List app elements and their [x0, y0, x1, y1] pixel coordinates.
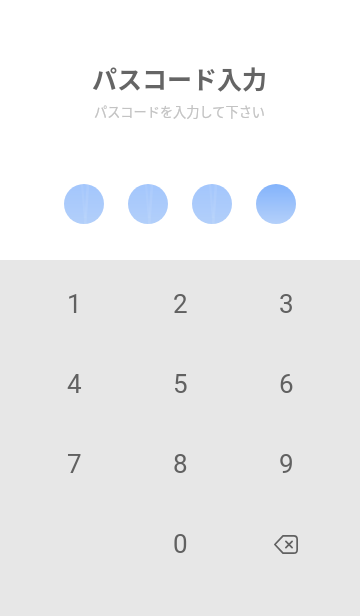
staticText: 3 — [279, 289, 294, 319]
staticText: 4 — [67, 369, 82, 399]
staticText: パスコードを入力して下さい — [94, 102, 266, 121]
staticText: 8 — [173, 449, 188, 479]
button[interactable]: 1 — [21, 264, 127, 344]
other: Backspace — [274, 535, 298, 554]
button[interactable]: 2 — [127, 264, 233, 344]
staticText: 7 — [67, 449, 82, 479]
button[interactable]: 4 — [21, 344, 127, 424]
button[interactable]: 6 — [233, 344, 339, 424]
staticText: 6 — [279, 369, 294, 399]
staticText: 9 — [279, 449, 294, 479]
staticText: 0 — [173, 529, 188, 559]
staticText: パスコード入力 — [92, 60, 268, 96]
button[interactable]: 3 — [233, 264, 339, 344]
button[interactable]: 5 — [127, 344, 233, 424]
staticText: 1 — [67, 289, 82, 319]
button[interactable]: 7 — [21, 424, 127, 504]
button[interactable]: 0 — [127, 504, 233, 584]
button[interactable]: Backspace — [233, 504, 339, 584]
button[interactable]: 8 — [127, 424, 233, 504]
staticText: 2 — [173, 289, 188, 319]
staticText: 5 — [173, 369, 188, 399]
button[interactable]: 9 — [233, 424, 339, 504]
